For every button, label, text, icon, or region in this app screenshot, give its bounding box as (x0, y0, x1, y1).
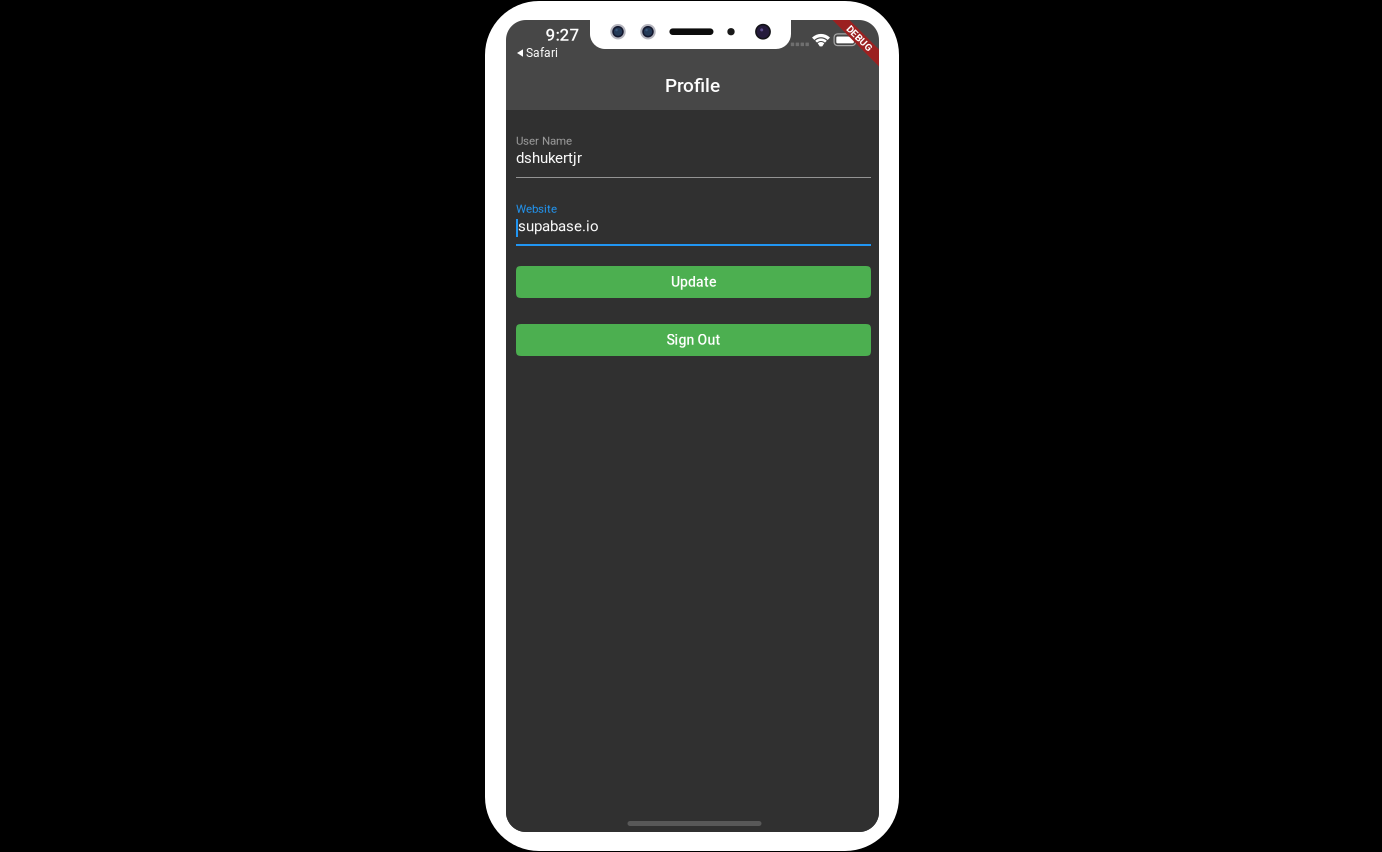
staticText: dshukertjr (516, 149, 582, 167)
staticText: User Name (516, 134, 572, 147)
staticText: Safari (526, 46, 558, 60)
button[interactable]: Safari (506, 45, 564, 61)
staticText: DEBUG (843, 33, 875, 44)
button[interactable]: Update (516, 266, 871, 298)
staticText: supabase.io (518, 217, 599, 235)
staticText: Profile (665, 74, 720, 97)
button[interactable]: Sign Out (516, 324, 871, 356)
staticText: Website (516, 202, 557, 215)
staticText: Update (671, 274, 716, 290)
staticText: Sign Out (666, 332, 720, 348)
staticText: 9:27 (545, 25, 579, 45)
